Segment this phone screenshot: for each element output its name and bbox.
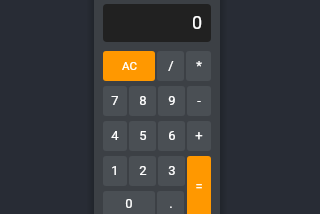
button[interactable]: 2 [129,156,156,186]
button[interactable]: 6 [158,121,185,151]
button[interactable]: 3 [158,156,185,186]
button[interactable]: 5 [129,121,156,151]
staticText: 4 [111,128,119,143]
staticText: AC [122,59,137,72]
button[interactable]: = [187,156,211,214]
button[interactable]: * [186,51,211,81]
staticText: 7 [111,93,119,108]
staticText: . [169,196,173,211]
staticText: / [168,58,174,73]
button[interactable]: 7 [103,86,127,116]
staticText: 2 [139,163,147,178]
button[interactable]: - [187,86,211,116]
staticText: * [196,58,202,73]
staticText: + [195,128,203,143]
button[interactable]: 8 [129,86,156,116]
staticText: - [197,93,201,108]
button[interactable]: / [157,51,184,81]
staticText: 1 [111,163,119,178]
staticText: 0 [125,196,133,211]
button[interactable]: + [187,121,211,151]
button[interactable]: . [157,191,184,214]
button[interactable]: 1 [103,156,127,186]
staticText: 6 [168,128,176,143]
staticText: 3 [168,163,176,178]
button[interactable]: 4 [103,121,127,151]
button[interactable]: AC [103,51,155,81]
staticText: 5 [139,128,147,143]
staticText: 8 [139,93,147,108]
staticText: 9 [168,93,176,108]
staticText: = [195,179,203,194]
staticText: 0 [192,12,203,33]
button[interactable]: 9 [158,86,185,116]
button[interactable]: 0 [103,191,155,214]
